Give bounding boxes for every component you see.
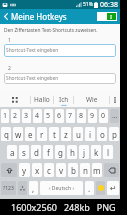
button[interactable]: e: [25, 127, 35, 141]
staticText: h: [70, 147, 75, 158]
button[interactable]: x: [32, 163, 42, 177]
staticText: x: [35, 165, 40, 176]
staticText: I: [110, 13, 113, 20]
button[interactable]: Back: [0, 9, 11, 24]
button[interactable]: Enable hotkeys: [97, 12, 117, 21]
button[interactable]: Input options: [18, 181, 27, 195]
staticText: 0: [101, 111, 106, 121]
button[interactable]: s: [19, 145, 29, 159]
staticText: …: [112, 111, 118, 121]
staticText: p: [112, 129, 117, 140]
button[interactable]: 4: [33, 109, 42, 123]
button[interactable]: o: [97, 127, 107, 141]
staticText: e: [28, 129, 33, 140]
staticText: 2: [8, 65, 11, 72]
button[interactable]: 1: [1, 109, 9, 123]
staticText: m: [93, 165, 101, 176]
staticText: 5: [46, 111, 51, 121]
button[interactable]: More symbols: [110, 109, 119, 123]
staticText: s: [22, 147, 26, 158]
staticText: k: [94, 147, 99, 158]
staticText: ,: [32, 183, 35, 194]
staticText: 51%: [83, 1, 93, 8]
button[interactable]: 5: [44, 109, 53, 123]
button[interactable]: 0: [99, 109, 108, 123]
staticText: ?123: [3, 185, 14, 192]
staticText: d: [34, 147, 39, 158]
button[interactable]: a: [7, 145, 17, 159]
staticText: 9: [90, 111, 95, 121]
button[interactable]: z: [61, 127, 71, 141]
button[interactable]: y: [19, 163, 30, 177]
staticText: 7: [68, 111, 73, 121]
button[interactable]: h: [67, 145, 77, 159]
staticText: .: [88, 183, 91, 194]
staticText: 1: [3, 111, 8, 121]
staticText: Hallo: [34, 95, 50, 104]
staticText: g: [58, 147, 63, 158]
button[interactable]: ,: [29, 181, 38, 195]
button[interactable]: m: [92, 163, 102, 177]
staticText: Den Ziffertasten Text-Shortcuts zuweisen…: [4, 27, 98, 34]
button[interactable]: l: [103, 145, 113, 159]
button[interactable]: 7: [66, 109, 75, 123]
button[interactable]: Ich: [54, 92, 73, 107]
button[interactable]: t: [49, 127, 59, 141]
staticText: ↵: [110, 184, 117, 193]
staticText: Meine Hotkeys: [11, 11, 67, 22]
button[interactable]: Shift: [1, 163, 17, 177]
staticText: j: [83, 147, 86, 158]
button[interactable]: v: [56, 163, 66, 177]
button[interactable]: n: [80, 163, 90, 177]
button[interactable]: ?123: [1, 181, 16, 195]
button[interactable]: Hallo: [31, 92, 53, 107]
staticText: u: [76, 129, 81, 140]
staticText: Shortcut-Text eingeben: [6, 75, 59, 82]
button[interactable]: r: [37, 127, 47, 141]
button[interactable]: 3: [22, 109, 31, 123]
button[interactable]: Backspace: [104, 163, 119, 177]
button[interactable]: Keyboard layouts: [0, 92, 30, 107]
staticText: 8: [79, 111, 84, 121]
button[interactable]: 6: [55, 109, 64, 123]
staticText: 06:38: [100, 0, 118, 9]
staticText: i: [89, 129, 92, 140]
button[interactable]: .: [85, 181, 94, 195]
button[interactable]: Wie: [74, 92, 109, 107]
staticText: 1600x2560 248kb PNG: [11, 201, 116, 213]
button[interactable]: j: [79, 145, 89, 159]
button[interactable]: p: [109, 127, 119, 141]
button[interactable]: More options: [110, 92, 120, 107]
staticText: o: [100, 129, 105, 140]
button[interactable]: w: [13, 127, 23, 141]
staticText: l: [107, 147, 110, 158]
staticText: r: [40, 129, 44, 140]
staticText: v: [59, 165, 64, 176]
button[interactable]: Enter: [107, 181, 119, 195]
button[interactable]: b: [68, 163, 78, 177]
button[interactable]: Shortcut-Text eingeben: [4, 73, 116, 84]
staticText: Ich: [59, 95, 69, 104]
button[interactable]: ‹ Deutsch ›: [40, 181, 83, 195]
button[interactable]: d: [31, 145, 41, 159]
button[interactable]: g: [55, 145, 65, 159]
staticText: y: [22, 165, 27, 176]
button[interactable]: i: [85, 127, 95, 141]
staticText: t: [53, 129, 56, 140]
staticText: 1: [8, 37, 11, 44]
staticText: c: [47, 165, 51, 176]
button[interactable]: c: [44, 163, 54, 177]
button[interactable]: q: [1, 127, 11, 141]
staticText: w: [15, 129, 22, 140]
staticText: 4: [35, 111, 40, 121]
button[interactable]: 2: [11, 109, 20, 123]
button[interactable]: Shortcut-Text eingeben: [4, 44, 116, 57]
staticText: Wie: [86, 95, 98, 104]
button[interactable]: 8: [77, 109, 86, 123]
button[interactable]: u: [73, 127, 83, 141]
staticText: z: [64, 129, 68, 140]
button[interactable]: Emoji: [96, 181, 105, 195]
button[interactable]: f: [43, 145, 53, 159]
button[interactable]: 9: [88, 109, 97, 123]
button[interactable]: k: [91, 145, 101, 159]
